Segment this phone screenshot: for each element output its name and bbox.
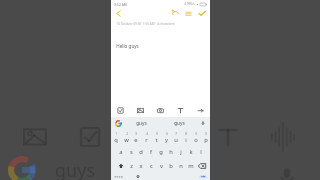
staticText: w (124, 136, 129, 144)
staticText: c (150, 162, 153, 170)
button[interactable]: 4 (141, 130, 151, 145)
staticText: 3 (135, 132, 137, 136)
staticText: guys (174, 120, 185, 127)
button[interactable]: Emoji (133, 175, 143, 178)
button[interactable]: 6 (161, 130, 171, 145)
button[interactable]: Back (113, 8, 124, 19)
button[interactable]: Undo (170, 8, 181, 19)
button[interactable]: j (176, 145, 186, 159)
button[interactable]: Send (190, 103, 210, 117)
staticText: j (180, 148, 182, 156)
button[interactable]: x (136, 159, 146, 173)
staticText: d (139, 148, 143, 156)
staticText: b (169, 162, 173, 170)
button[interactable]: Google search (113, 118, 123, 128)
staticText: u (174, 136, 178, 144)
staticText: s (130, 148, 133, 156)
staticText: v (160, 162, 163, 170)
button[interactable]: Enter (196, 175, 209, 178)
button[interactable]: h (166, 145, 176, 159)
button[interactable]: guys (160, 117, 198, 129)
button[interactable]: Checklist (111, 103, 130, 117)
button[interactable]: 5 (151, 130, 161, 145)
button[interactable]: n (176, 159, 186, 173)
staticText: ?123 (114, 175, 123, 178)
staticText: l (200, 148, 202, 156)
button[interactable]: Done (196, 8, 208, 19)
staticText: 9:52 AM (114, 2, 127, 6)
button[interactable]: f (146, 145, 156, 159)
staticText: guys (136, 120, 147, 127)
staticText: t (155, 136, 158, 144)
button[interactable]: 8 (181, 130, 191, 145)
staticText: guys (55, 158, 95, 180)
button[interactable]: Camera (150, 103, 170, 117)
button[interactable]: Insert image (130, 103, 150, 117)
staticText: q (114, 136, 118, 144)
staticText: m (188, 162, 194, 170)
button[interactable]: ?123 (112, 175, 125, 178)
staticText: n (179, 162, 183, 170)
staticText: g (159, 148, 163, 156)
staticText: e (134, 136, 138, 144)
staticText: 4.99K/s (184, 2, 195, 6)
button[interactable]: Backspace (196, 159, 207, 173)
staticText: y (165, 136, 168, 144)
staticText: a (119, 148, 123, 156)
button[interactable]: a (116, 145, 126, 159)
button[interactable]: 9 (191, 130, 201, 145)
staticText: 1 (115, 132, 117, 136)
button[interactable]: v (156, 159, 166, 173)
staticText: 4 (146, 132, 148, 136)
staticText: k (189, 148, 193, 156)
staticText: Hello guys (116, 43, 139, 49)
button[interactable]: s (126, 145, 136, 159)
button[interactable]: 3 (131, 130, 141, 145)
staticText: x (139, 162, 143, 170)
staticText: p (204, 136, 208, 144)
button[interactable]: 0 (201, 130, 210, 145)
button[interactable]: 7 (171, 130, 181, 145)
staticText: 8 (185, 132, 187, 136)
button[interactable]: l (196, 145, 206, 159)
staticText: h (169, 148, 173, 156)
button[interactable]: 2 (121, 130, 131, 145)
staticText: f (150, 148, 152, 156)
staticText: z (130, 162, 133, 170)
staticText: 14 October 09:36 1:56 AM · 4 characters (116, 22, 175, 26)
button[interactable]: 1 (111, 130, 121, 145)
staticText: 7 (175, 132, 177, 136)
button[interactable]: z (126, 159, 136, 173)
button[interactable]: d (136, 145, 146, 159)
button[interactable]: Voice input (198, 118, 208, 128)
button[interactable]: m (186, 159, 196, 173)
staticText: i (185, 136, 187, 144)
button[interactable]: More options (183, 8, 194, 19)
staticText: 6 (166, 132, 168, 136)
staticText: o (194, 136, 198, 144)
button[interactable]: guys (123, 117, 160, 129)
staticText: 2 (126, 132, 128, 136)
button[interactable]: Shift (115, 159, 126, 173)
button[interactable]: b (166, 159, 176, 173)
button[interactable]: Text formatting (170, 103, 190, 117)
button[interactable]: k (186, 145, 196, 159)
staticText: 9 (195, 132, 197, 136)
button[interactable]: c (146, 159, 156, 173)
button[interactable]: g (156, 145, 166, 159)
button[interactable]: Hello guys (111, 26, 210, 103)
staticText: 5 (156, 132, 158, 136)
staticText: r (145, 136, 148, 144)
staticText: 0 (205, 132, 207, 136)
